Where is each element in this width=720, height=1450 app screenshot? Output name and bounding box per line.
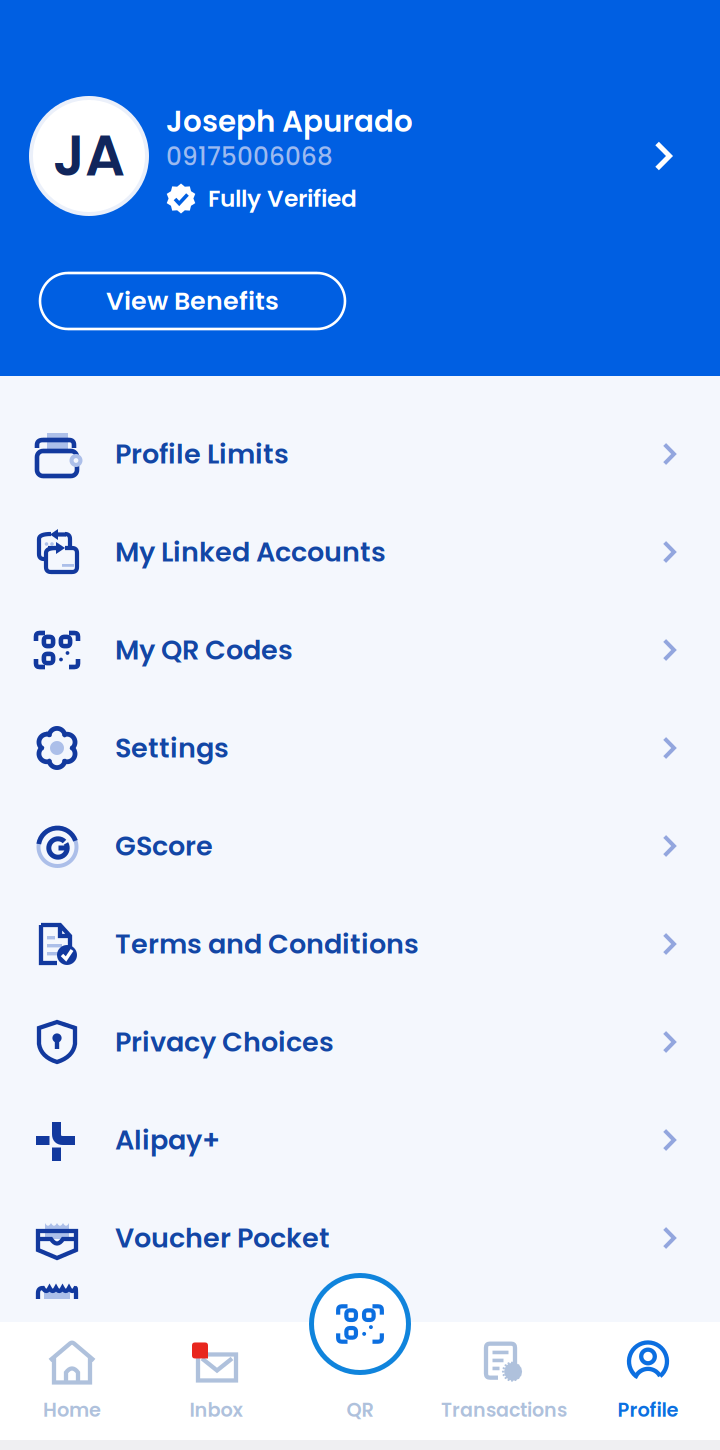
button[interactable]: Profile: [576, 1326, 720, 1436]
button[interactable]: Terms and Conditions: [0, 895, 720, 993]
button[interactable]: Voucher Pocket: [0, 1189, 720, 1287]
button[interactable]: QR code scanner: [310, 1274, 410, 1374]
staticText: QR: [346, 1396, 373, 1424]
staticText: Profile Limits: [115, 435, 289, 473]
button[interactable]: Profile Limits: [0, 405, 720, 503]
staticText: Home: [43, 1396, 101, 1424]
staticText: Alipay+: [115, 1121, 220, 1159]
button[interactable]: JA: [0, 96, 720, 216]
staticText: Terms and Conditions: [115, 925, 419, 963]
staticText: Settings: [115, 729, 229, 767]
staticText: JA: [53, 117, 125, 195]
button[interactable]: Home: [0, 1326, 144, 1436]
button[interactable]: Privacy Choices: [0, 993, 720, 1091]
staticText: 09175006068: [166, 139, 333, 174]
staticText: Profile: [617, 1396, 678, 1424]
button[interactable]: GScore: [0, 797, 720, 895]
staticText: Transactions: [441, 1397, 567, 1423]
staticText: Inbox: [189, 1396, 242, 1424]
staticText: View Benefits: [106, 283, 279, 319]
staticText: GScore: [115, 827, 213, 865]
button[interactable]: Inbox: [144, 1326, 288, 1436]
staticText: Privacy Choices: [115, 1023, 334, 1061]
button[interactable]: Transactions: [432, 1326, 576, 1436]
button[interactable]: My QR Codes: [0, 601, 720, 699]
staticText: Joseph Apurado: [166, 101, 413, 142]
button[interactable]: More: [0, 1287, 720, 1313]
button[interactable]: View Benefits: [40, 273, 345, 329]
button[interactable]: My Linked Accounts: [0, 503, 720, 601]
staticText: My QR Codes: [115, 631, 293, 669]
button[interactable]: Settings: [0, 699, 720, 797]
button[interactable]: Alipay+: [0, 1091, 720, 1189]
staticText: Voucher Pocket: [115, 1219, 330, 1257]
staticText: Fully Verified: [208, 182, 357, 215]
staticText: My Linked Accounts: [115, 533, 386, 571]
button[interactable]: QR: [288, 1326, 432, 1436]
